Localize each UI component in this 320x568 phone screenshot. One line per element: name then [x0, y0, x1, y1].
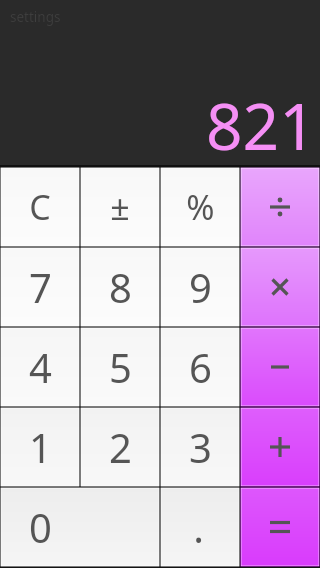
staticText: 5	[109, 340, 132, 394]
button[interactable]: 2	[80, 407, 160, 487]
staticText: 3	[189, 420, 212, 474]
button[interactable]: 5	[80, 327, 160, 407]
button[interactable]: 6	[160, 327, 240, 407]
staticText: 1	[29, 420, 52, 474]
button[interactable]: .	[160, 487, 240, 567]
staticText: 2	[109, 420, 132, 474]
button[interactable]: Subtract	[240, 327, 320, 407]
staticText: 4	[29, 340, 52, 394]
button[interactable]: 3	[160, 407, 240, 487]
button[interactable]: C	[0, 167, 80, 247]
staticText: %	[186, 184, 215, 230]
staticText: C	[29, 184, 51, 230]
staticText: 821	[206, 82, 316, 169]
button[interactable]: Add	[240, 407, 320, 487]
staticText: ±	[110, 184, 130, 230]
staticText: 9	[189, 260, 212, 314]
staticText: 0	[29, 500, 52, 554]
button[interactable]: 8	[80, 247, 160, 327]
staticText: 8	[109, 260, 132, 314]
button[interactable]: 9	[160, 247, 240, 327]
button[interactable]: Multiply	[240, 247, 320, 327]
button[interactable]: Equals	[240, 487, 320, 567]
staticText: .	[193, 500, 204, 554]
staticText: 7	[29, 260, 52, 314]
button[interactable]: 4	[0, 327, 80, 407]
staticText: 6	[189, 340, 212, 394]
button[interactable]: 0	[0, 487, 160, 567]
button[interactable]: %	[160, 167, 240, 247]
button[interactable]: settings	[10, 8, 61, 26]
button[interactable]: ±	[80, 167, 160, 247]
button[interactable]: Divide	[240, 167, 320, 247]
button[interactable]: 1	[0, 407, 80, 487]
button[interactable]: 7	[0, 247, 80, 327]
